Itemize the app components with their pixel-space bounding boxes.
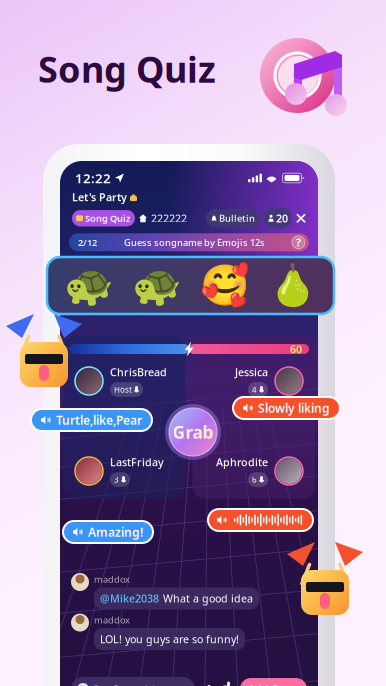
staticText: 3 bbox=[114, 474, 119, 485]
staticText: Say Something bbox=[93, 682, 169, 686]
staticText: LOL! you guys are so funny! bbox=[100, 632, 239, 646]
staticText: Host bbox=[114, 384, 132, 395]
staticText: Turtle,like,Pear bbox=[56, 412, 142, 428]
button[interactable]: Add Song bbox=[240, 678, 307, 686]
staticText: 🐢 bbox=[63, 263, 113, 308]
staticText: Bulletin bbox=[219, 212, 255, 224]
button[interactable]: Close bbox=[296, 213, 306, 223]
staticText: ChrisBread bbox=[110, 365, 167, 379]
staticText: Let's Party bbox=[72, 190, 127, 204]
button[interactable]: Aphrodite bbox=[189, 455, 318, 487]
button[interactable]: Help bbox=[292, 235, 309, 249]
staticText: 🥰 bbox=[199, 263, 249, 308]
button[interactable]: LastFriday bbox=[60, 455, 189, 487]
staticText: What a good idea bbox=[163, 591, 253, 606]
staticText: Grab bbox=[172, 420, 213, 443]
button[interactable]: ChrisBread bbox=[60, 365, 189, 397]
staticText: Amazing! bbox=[88, 524, 143, 540]
staticText: 🐢 bbox=[131, 263, 181, 308]
staticText: @Mike2038 bbox=[100, 591, 159, 606]
button[interactable]: Jessica bbox=[189, 365, 318, 397]
staticText: 🍐 bbox=[267, 263, 317, 308]
staticText: 12:22 bbox=[75, 169, 111, 187]
staticText: ? bbox=[296, 235, 301, 249]
staticText: Add Song bbox=[248, 682, 299, 686]
button[interactable]: Grab bbox=[165, 404, 221, 460]
button[interactable]: 20 bbox=[264, 208, 292, 228]
staticText: LastFriday bbox=[110, 455, 164, 469]
staticText: Slowly liking bbox=[258, 400, 330, 416]
staticText: Aphrodite bbox=[216, 455, 268, 469]
staticText: 222222 bbox=[151, 211, 187, 225]
staticText: 4 bbox=[252, 384, 257, 395]
staticText: maddox bbox=[94, 573, 130, 585]
staticText: 60 bbox=[290, 342, 302, 356]
button[interactable]: Say Something bbox=[71, 677, 195, 686]
staticText: 20 bbox=[276, 211, 288, 225]
staticText: 6 bbox=[252, 474, 257, 485]
staticText: Song Quiz bbox=[38, 45, 216, 93]
staticText: maddox bbox=[94, 614, 130, 626]
staticText: Jessica bbox=[235, 365, 268, 379]
button[interactable]: Microphone bbox=[223, 681, 234, 686]
button[interactable]: Bulletin bbox=[206, 209, 260, 227]
staticText: Guess songname by Emojis 12s bbox=[124, 236, 265, 248]
staticText: 2/12 bbox=[78, 236, 97, 248]
staticText: Song Quiz bbox=[85, 212, 131, 224]
button[interactable]: Gift bbox=[201, 681, 217, 686]
